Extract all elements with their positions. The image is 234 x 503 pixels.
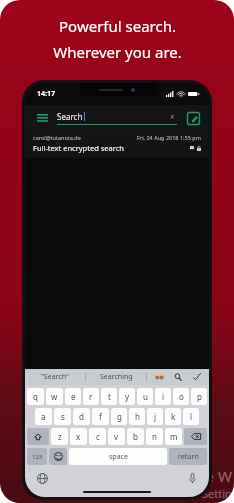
button[interactable]: v <box>108 428 125 445</box>
button[interactable]: b <box>127 428 144 445</box>
button[interactable]: m <box>165 428 182 445</box>
button[interactable]: Compose <box>185 110 201 126</box>
staticText: q <box>33 391 38 402</box>
button[interactable]: n <box>146 428 163 445</box>
button[interactable]: s <box>54 408 71 425</box>
staticText: 123 <box>32 453 43 461</box>
staticText: d <box>79 411 84 422</box>
button[interactable]: l <box>183 408 199 425</box>
staticText: v <box>114 431 119 442</box>
staticText: k <box>171 411 176 422</box>
staticText: w <box>51 391 58 402</box>
staticText: 14:17 <box>37 89 55 99</box>
button[interactable]: "Search" <box>25 369 85 385</box>
button[interactable]: Searching <box>86 369 146 385</box>
button[interactable]: d <box>73 408 90 425</box>
button[interactable]: z <box>51 428 68 445</box>
button[interactable]: q <box>27 388 44 405</box>
staticText: l <box>190 411 193 422</box>
staticText: e <box>71 391 76 402</box>
button[interactable]: a <box>35 408 52 425</box>
button[interactable]: g <box>111 408 127 425</box>
button[interactable]: x <box>70 428 87 445</box>
staticText: Activate W <box>158 466 232 486</box>
button[interactable]: 123 <box>27 448 47 465</box>
button[interactable]: o <box>173 388 189 405</box>
button[interactable]: Voice input <box>185 471 199 485</box>
staticText: r <box>89 391 93 402</box>
button[interactable]: h <box>129 408 145 425</box>
staticText: f <box>99 411 102 422</box>
staticText: u <box>143 391 148 402</box>
staticText: Search <box>57 111 83 122</box>
staticText: Searching <box>100 372 133 382</box>
staticText: s <box>61 411 65 422</box>
button[interactable]: f <box>92 408 109 425</box>
staticText: return <box>178 452 199 462</box>
staticText: p <box>197 391 202 402</box>
button[interactable]: carol@tutanota.de <box>25 131 209 158</box>
staticText: o <box>179 391 184 402</box>
button[interactable]: u <box>137 388 153 405</box>
staticText: Powerful search. <box>59 16 176 36</box>
staticText: j <box>154 411 157 422</box>
button[interactable]: Search <box>171 370 185 384</box>
staticText: n <box>152 431 157 442</box>
button[interactable]: Search <box>57 111 177 125</box>
staticText: c <box>96 431 100 442</box>
button[interactable]: Emoji suggestions <box>152 370 166 384</box>
staticText: m <box>170 431 178 442</box>
button[interactable]: space <box>69 448 167 465</box>
button[interactable]: return <box>169 448 207 465</box>
staticText: Fri, 24 Aug 2018 1:55 pm <box>137 134 201 141</box>
button[interactable]: e <box>65 388 81 405</box>
staticText: space <box>109 452 128 462</box>
button[interactable]: y <box>119 388 135 405</box>
button[interactable]: Menu <box>33 109 51 127</box>
button[interactable]: k <box>165 408 181 425</box>
staticText: Full-text encrypted search <box>33 143 124 153</box>
button[interactable]: i <box>155 388 171 405</box>
staticText: carol@tutanota.de <box>33 134 81 141</box>
button[interactable]: Shift <box>27 428 49 445</box>
staticText: y <box>125 391 130 402</box>
staticText: b <box>133 431 138 442</box>
staticText: h <box>135 411 140 422</box>
staticText: "Search" <box>41 372 69 382</box>
staticText: t <box>108 391 111 402</box>
staticText: × <box>170 111 175 122</box>
staticText: Go to Settin <box>171 486 232 501</box>
button[interactable]: r <box>83 388 99 405</box>
staticText: a <box>41 411 46 422</box>
button[interactable]: Emoji <box>49 448 67 465</box>
button[interactable]: Backspace <box>184 428 207 445</box>
staticText: x <box>76 431 81 442</box>
button[interactable]: Change keyboard <box>35 471 49 485</box>
staticText: z <box>58 431 62 442</box>
button[interactable]: t <box>101 388 117 405</box>
staticText: Wherever you are. <box>53 42 182 62</box>
staticText: g <box>117 411 122 422</box>
staticText: i <box>162 391 165 402</box>
button[interactable]: Handwriting <box>190 370 204 384</box>
button[interactable]: p <box>191 388 207 405</box>
button[interactable]: w <box>46 388 63 405</box>
button[interactable]: j <box>147 408 163 425</box>
button[interactable]: c <box>89 428 106 445</box>
